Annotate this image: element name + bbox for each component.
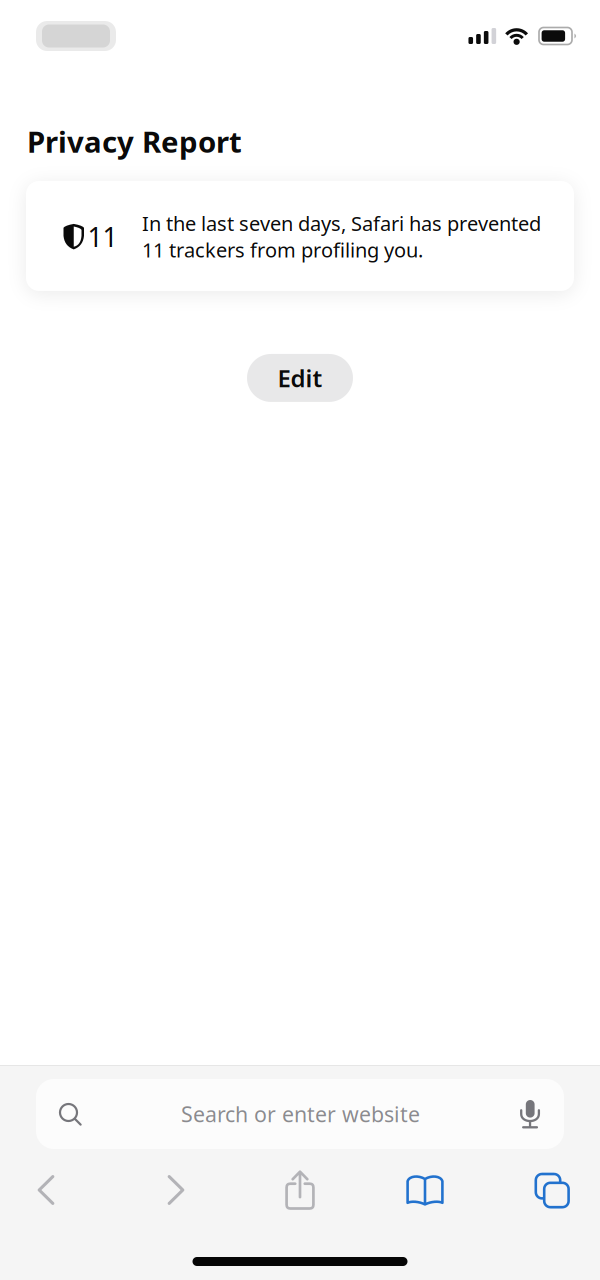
button[interactable]: Bookmarks	[379, 1164, 471, 1216]
staticText: 11	[87, 219, 117, 254]
button[interactable]: Edit	[247, 354, 353, 402]
button[interactable]: Share	[254, 1164, 346, 1216]
button[interactable]: Forward	[130, 1164, 222, 1216]
button[interactable]: Search or enter website	[36, 1079, 564, 1149]
button[interactable]: Back	[0, 1164, 92, 1216]
button[interactable]: Tabs	[505, 1164, 597, 1216]
staticText: Edit	[277, 362, 322, 394]
staticText: 11 trackers from profiling you.	[142, 236, 423, 263]
staticText: Privacy Report	[27, 122, 242, 161]
staticText: Search or enter website	[181, 1100, 420, 1128]
staticText: In the last seven days, Safari has preve…	[142, 210, 541, 237]
